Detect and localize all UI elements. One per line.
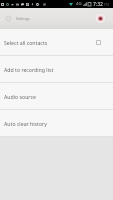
staticText: Audio source [4,93,36,100]
button[interactable]: Auto clear history [0,110,113,137]
staticText: 7:32 [93,1,103,8]
staticText: 4G [76,1,82,7]
staticText: PM [104,2,110,7]
button[interactable]: Select all contacts [0,29,113,56]
button[interactable]: Navigate up [5,15,11,21]
staticText: Add to recording list [4,66,54,73]
button[interactable]: Audio source [0,83,113,110]
staticText: Settings [16,16,30,21]
button[interactable]: Add to recording list [0,56,113,83]
staticText: Select all contacts [4,39,48,46]
staticText: Auto clear history [4,120,47,127]
button[interactable]: Record [94,12,107,25]
